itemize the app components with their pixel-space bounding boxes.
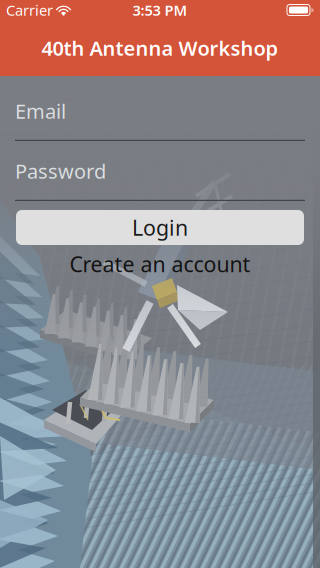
staticText: Carrier [6,0,53,20]
staticText: Create an account [69,250,250,278]
button[interactable]: Create an account [0,249,320,279]
button[interactable]: Login [0,210,320,245]
staticText: 3:53 PM [132,0,187,20]
staticText: Password [15,158,106,184]
staticText: 40th Antenna Workshop [41,35,278,61]
staticText: Email [15,98,66,124]
staticText: Login [132,213,188,242]
